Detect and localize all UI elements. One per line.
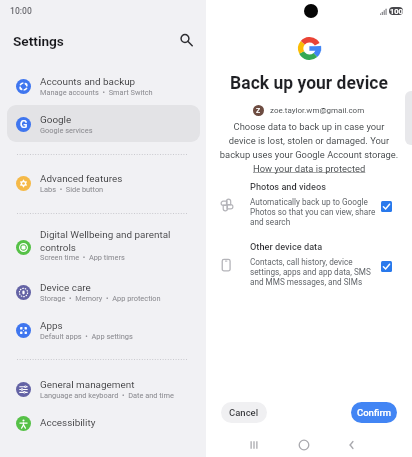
button[interactable]: Search [177, 31, 194, 48]
staticText: Back up your device [206, 73, 412, 94]
staticText: Settings [13, 33, 64, 49]
staticText: Manage accounts • Smart Switch [40, 88, 153, 97]
staticText: Apps [40, 320, 63, 332]
button[interactable]: Home [296, 437, 312, 453]
button[interactable]: G [7, 106, 200, 142]
staticText: Z [256, 107, 261, 115]
button[interactable]: Confirm [351, 402, 397, 423]
button[interactable]: How your data is protected [253, 163, 366, 174]
staticText: 100 [390, 7, 403, 15]
button[interactable]: Advanced features [7, 165, 200, 201]
button[interactable]: Other device data [206, 241, 412, 293]
staticText: 10:00 [10, 6, 32, 16]
staticText: Other device data [250, 241, 323, 252]
staticText: G [20, 118, 28, 131]
staticText: Cancel [229, 407, 259, 418]
button[interactable]: Back [344, 437, 360, 453]
staticText: Screen time • App timers [40, 253, 125, 262]
button[interactable]: Other device data [381, 261, 392, 272]
staticText: Labs • Side button [40, 185, 104, 194]
button[interactable]: Recents [246, 437, 262, 453]
button[interactable]: Cancel [221, 402, 267, 423]
staticText: zoe.taylor.wm@gmail.com [270, 106, 365, 115]
staticText: Device care [40, 282, 91, 294]
button[interactable]: Device care [7, 274, 200, 310]
button[interactable]: Accounts and backup [7, 68, 200, 104]
button[interactable]: Apps [7, 312, 200, 348]
staticText: Photos and videos [250, 181, 326, 192]
staticText: Default apps • App settings [40, 332, 133, 341]
button[interactable]: Photos and videos [381, 201, 392, 212]
staticText: Advanced features [40, 173, 123, 185]
button[interactable]: General management [7, 371, 200, 407]
button[interactable]: Digital Wellbeing and parental controls [7, 229, 200, 265]
staticText: Accessibility [40, 417, 96, 429]
staticText: Google services [40, 126, 93, 135]
staticText: Confirm [357, 407, 392, 418]
staticText: Language and keyboard • Date and time [40, 391, 174, 400]
staticText: Accounts and backup [40, 76, 136, 88]
staticText: Contacts, call history, device settings,… [250, 257, 400, 287]
staticText: General management [40, 379, 135, 391]
staticText: Digital Wellbeing and parental controls [40, 229, 195, 254]
staticText: Choose data to back up in case your devi… [209, 121, 409, 160]
button[interactable]: Accessibility [7, 405, 200, 441]
staticText: Automatically back up to Google Photos s… [250, 197, 400, 227]
button[interactable]: Photos and videos [206, 181, 412, 233]
staticText: Google [40, 114, 72, 126]
staticText: Storage • Memory • App protection [40, 294, 161, 303]
